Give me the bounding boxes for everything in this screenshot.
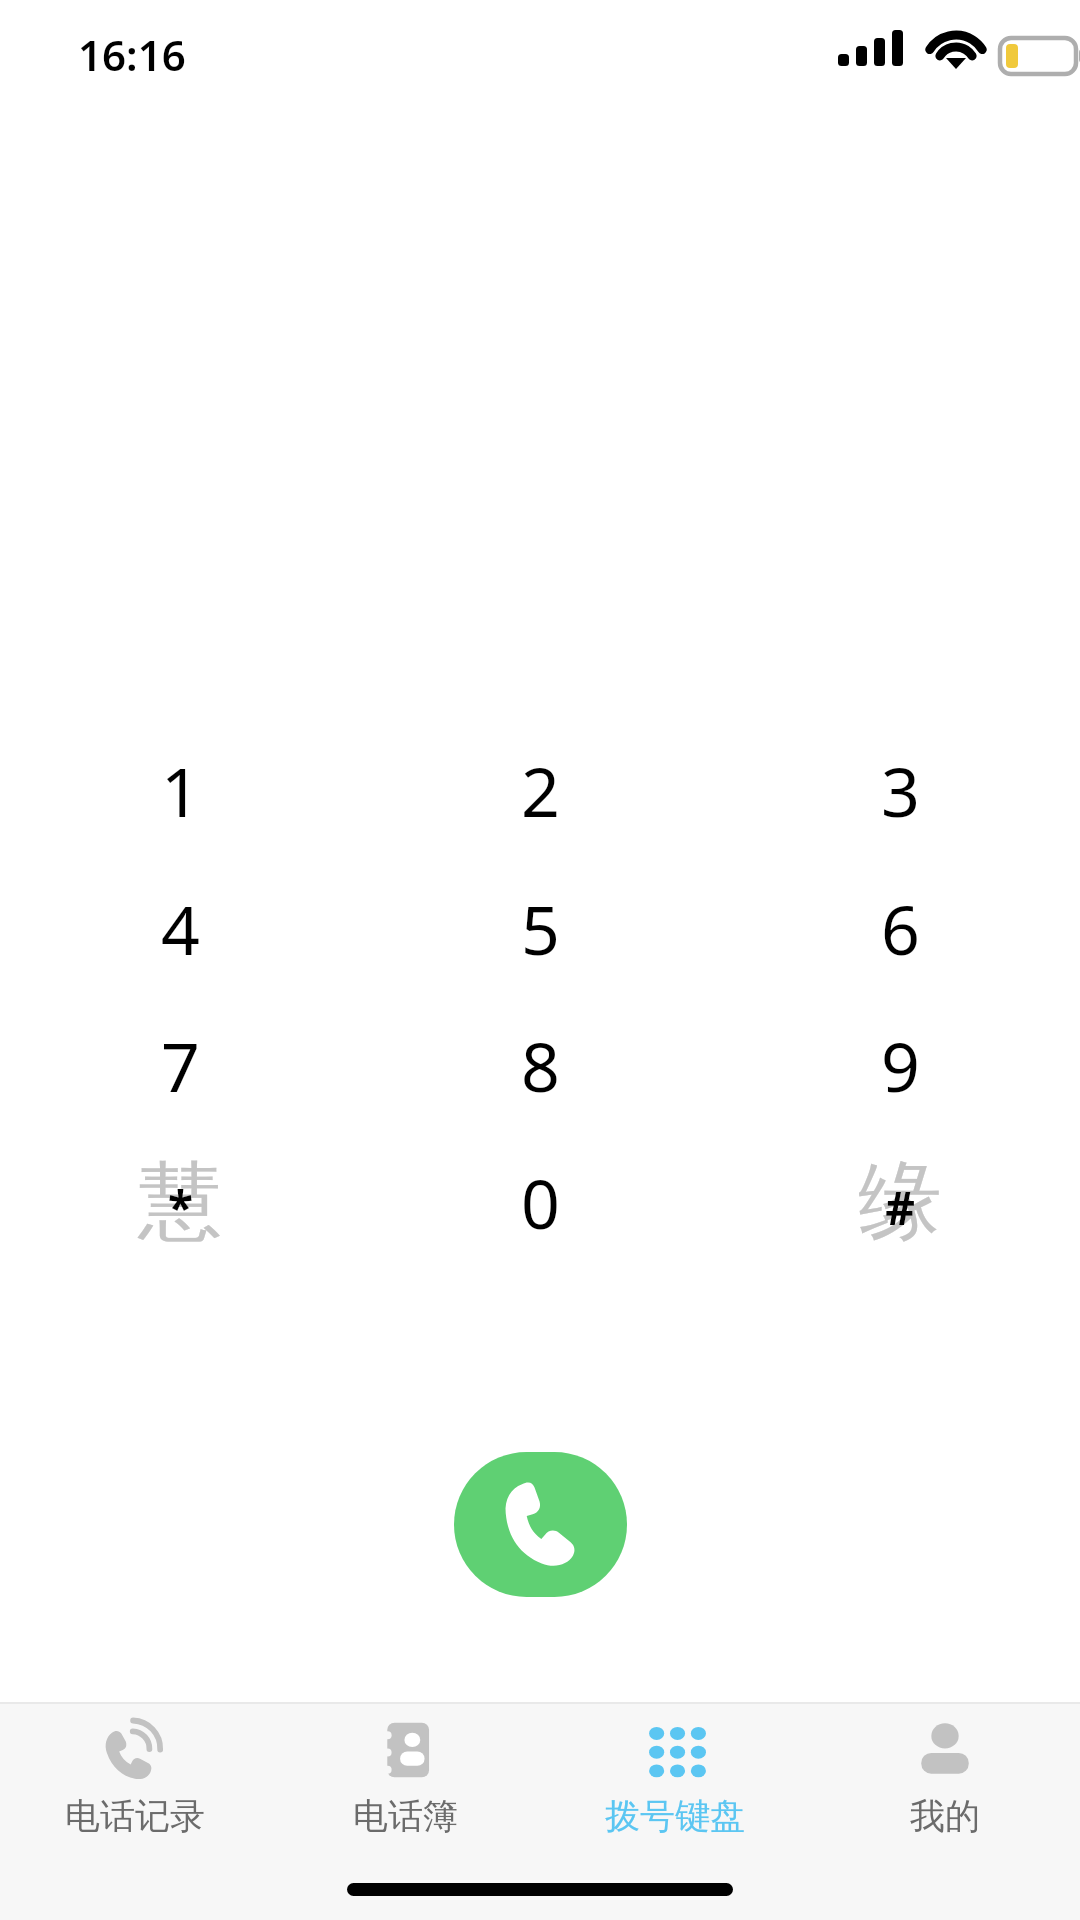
- staticText: 7: [161, 1019, 200, 1112]
- button[interactable]: 2: [420, 723, 660, 857]
- button[interactable]: 缘: [780, 1135, 1020, 1269]
- button[interactable]: 4: [60, 861, 300, 995]
- staticText: 9: [881, 1019, 920, 1112]
- button[interactable]: 电话记录: [10, 1714, 260, 1856]
- staticText: 3: [881, 744, 920, 837]
- button[interactable]: 6: [780, 861, 1020, 995]
- button[interactable]: 拨号键盘: [550, 1714, 800, 1856]
- staticText: *: [168, 1176, 193, 1239]
- staticText: #: [885, 1176, 915, 1239]
- button[interactable]: 5: [420, 861, 660, 995]
- button[interactable]: 3: [780, 723, 1020, 857]
- staticText: 电话簿: [353, 1794, 458, 1838]
- staticText: 缘: [858, 1149, 942, 1255]
- staticText: 慧: [138, 1149, 222, 1255]
- staticText: 8: [521, 1019, 560, 1112]
- button[interactable]: 我的: [820, 1714, 1070, 1856]
- button[interactable]: 慧: [60, 1135, 300, 1269]
- button[interactable]: 8: [420, 998, 660, 1132]
- staticText: 电话记录: [65, 1794, 205, 1838]
- button[interactable]: 1: [60, 723, 300, 857]
- button[interactable]: 电话簿: [280, 1714, 530, 1856]
- button[interactable]: 9: [780, 998, 1020, 1132]
- staticText: 0: [521, 1156, 560, 1249]
- staticText: 拨号键盘: [605, 1794, 745, 1838]
- staticText: 4: [161, 882, 200, 975]
- staticText: 2: [521, 744, 560, 837]
- staticText: 我的: [910, 1794, 980, 1838]
- staticText: 6: [881, 882, 920, 975]
- staticText: 1: [161, 744, 200, 837]
- staticText: 5: [521, 882, 560, 975]
- button[interactable]: 0: [420, 1135, 660, 1269]
- staticText: 16:16: [78, 26, 186, 83]
- button[interactable]: Call: [454, 1452, 627, 1597]
- button[interactable]: 7: [60, 998, 300, 1132]
